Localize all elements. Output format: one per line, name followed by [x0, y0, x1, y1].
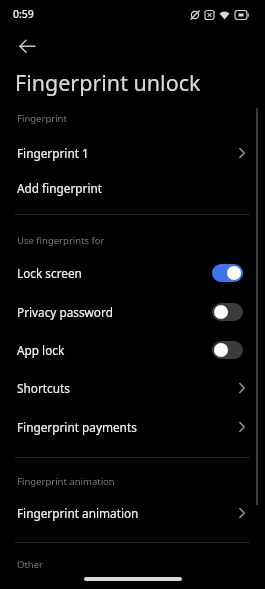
button[interactable] — [212, 264, 243, 282]
staticText: 0:59 — [13, 7, 34, 21]
button[interactable]: Add fingerprint — [0, 169, 265, 207]
staticText: Other — [17, 558, 44, 571]
button[interactable]: Privacy password — [0, 293, 265, 331]
staticText: App lock — [17, 342, 65, 358]
staticText: Fingerprint 1 — [17, 145, 89, 161]
staticText: Fingerprint animation — [17, 475, 115, 488]
staticText: Add fingerprint — [17, 180, 103, 196]
button[interactable] — [212, 303, 243, 321]
staticText: Shortcuts — [17, 380, 70, 396]
button[interactable] — [10, 36, 38, 58]
staticText: Fingerprint unlock — [15, 68, 201, 97]
button[interactable]: Fingerprint 1 — [0, 134, 265, 172]
staticText: Fingerprint payments — [17, 419, 137, 435]
staticText: Fingerprint animation — [17, 505, 139, 521]
staticText: Privacy password — [17, 304, 113, 320]
button[interactable]: Shortcuts — [0, 369, 265, 407]
button[interactable]: Fingerprint animation — [0, 494, 265, 532]
staticText: Fingerprint — [17, 112, 67, 125]
staticText: Lock screen — [17, 265, 82, 281]
button[interactable]: Lock screen — [0, 254, 265, 292]
staticText: Use fingerprints for — [17, 234, 105, 247]
button[interactable]: Fingerprint payments — [0, 408, 265, 446]
button[interactable] — [212, 341, 243, 359]
button[interactable]: App lock — [0, 331, 265, 369]
